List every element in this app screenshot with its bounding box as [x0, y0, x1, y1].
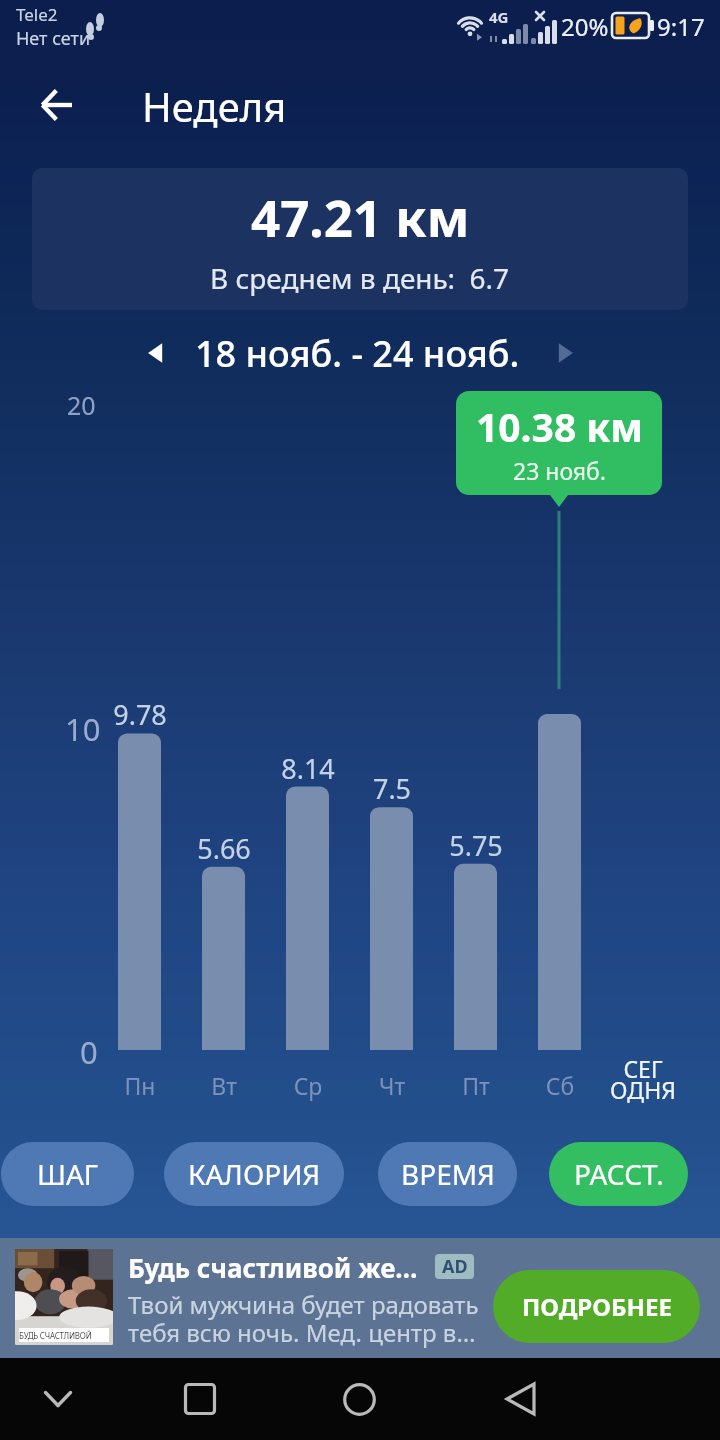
- button[interactable]: РАССТ.: [549, 1142, 688, 1206]
- staticText: 20%: [561, 10, 609, 43]
- staticText: 20: [67, 388, 96, 422]
- staticText: ПОДРОБНЕЕ: [522, 1290, 672, 1323]
- staticText: Нет сети: [16, 26, 91, 51]
- staticText: 10.38 км: [476, 400, 643, 453]
- staticText: Твой мужчина будет радовать: [128, 1288, 479, 1321]
- staticText: ВРЕМЯ: [401, 1155, 495, 1193]
- staticText: 7.5: [342, 770, 442, 807]
- staticText: В среднем в день: 6.7: [210, 259, 510, 297]
- staticText: КАЛОРИЯ: [188, 1155, 321, 1193]
- button[interactable]: ПОДРОБНЕЕ: [493, 1270, 700, 1343]
- staticText: 9:17: [657, 10, 705, 43]
- staticText: ШАГ: [37, 1155, 99, 1193]
- staticText: РАССТ.: [574, 1155, 664, 1193]
- staticText: СЕГ: [597, 1053, 689, 1084]
- staticText: ОДНЯ: [597, 1074, 689, 1105]
- button[interactable]: Hide keyboard: [18, 1361, 98, 1437]
- staticText: 0: [80, 1031, 98, 1073]
- staticText: 5.66: [174, 830, 274, 867]
- staticText: тебя всю ночь. Мед. центр в…: [128, 1316, 476, 1349]
- button[interactable]: Home: [319, 1361, 399, 1437]
- staticText: 18 нояб. - 24 нояб.: [195, 329, 520, 378]
- staticText: Будь счастливой же…: [128, 1250, 418, 1285]
- staticText: Пт: [426, 1070, 526, 1101]
- staticText: Tele2: [16, 3, 58, 26]
- button[interactable]: 47.21 км: [32, 168, 688, 310]
- staticText: Неделя: [142, 79, 287, 133]
- staticText: Пн: [90, 1070, 190, 1101]
- button[interactable]: КАЛОРИЯ: [164, 1142, 344, 1206]
- button[interactable]: ВРЕМЯ: [378, 1142, 517, 1206]
- staticText: 9.78: [90, 696, 190, 733]
- staticText: 5.75: [426, 827, 526, 864]
- button[interactable]: Recent apps: [160, 1361, 240, 1437]
- button[interactable]: Previous week: [131, 328, 181, 378]
- button[interactable]: Back: [480, 1361, 560, 1437]
- staticText: 4G: [489, 7, 509, 27]
- staticText: Вт: [174, 1070, 274, 1101]
- staticText: 10: [65, 708, 101, 750]
- button[interactable]: Back: [24, 72, 90, 138]
- button[interactable]: БУДЬ СЧАСТЛИВОЙ ЖЕНОЙ: [0, 1238, 720, 1358]
- staticText: 47.21 км: [251, 182, 470, 251]
- staticText: Ср: [258, 1070, 358, 1101]
- staticText: 23 нояб.: [513, 455, 607, 486]
- staticText: Сб: [510, 1070, 610, 1101]
- button[interactable]: Next week: [540, 328, 590, 378]
- staticText: 8.14: [258, 750, 358, 787]
- staticText: Чт: [342, 1070, 442, 1101]
- staticText: AD: [442, 1254, 468, 1279]
- staticText: БУДЬ СЧАСТЛИВОЙ ЖЕНОЙ: [19, 1330, 109, 1341]
- button[interactable]: ШАГ: [1, 1142, 134, 1206]
